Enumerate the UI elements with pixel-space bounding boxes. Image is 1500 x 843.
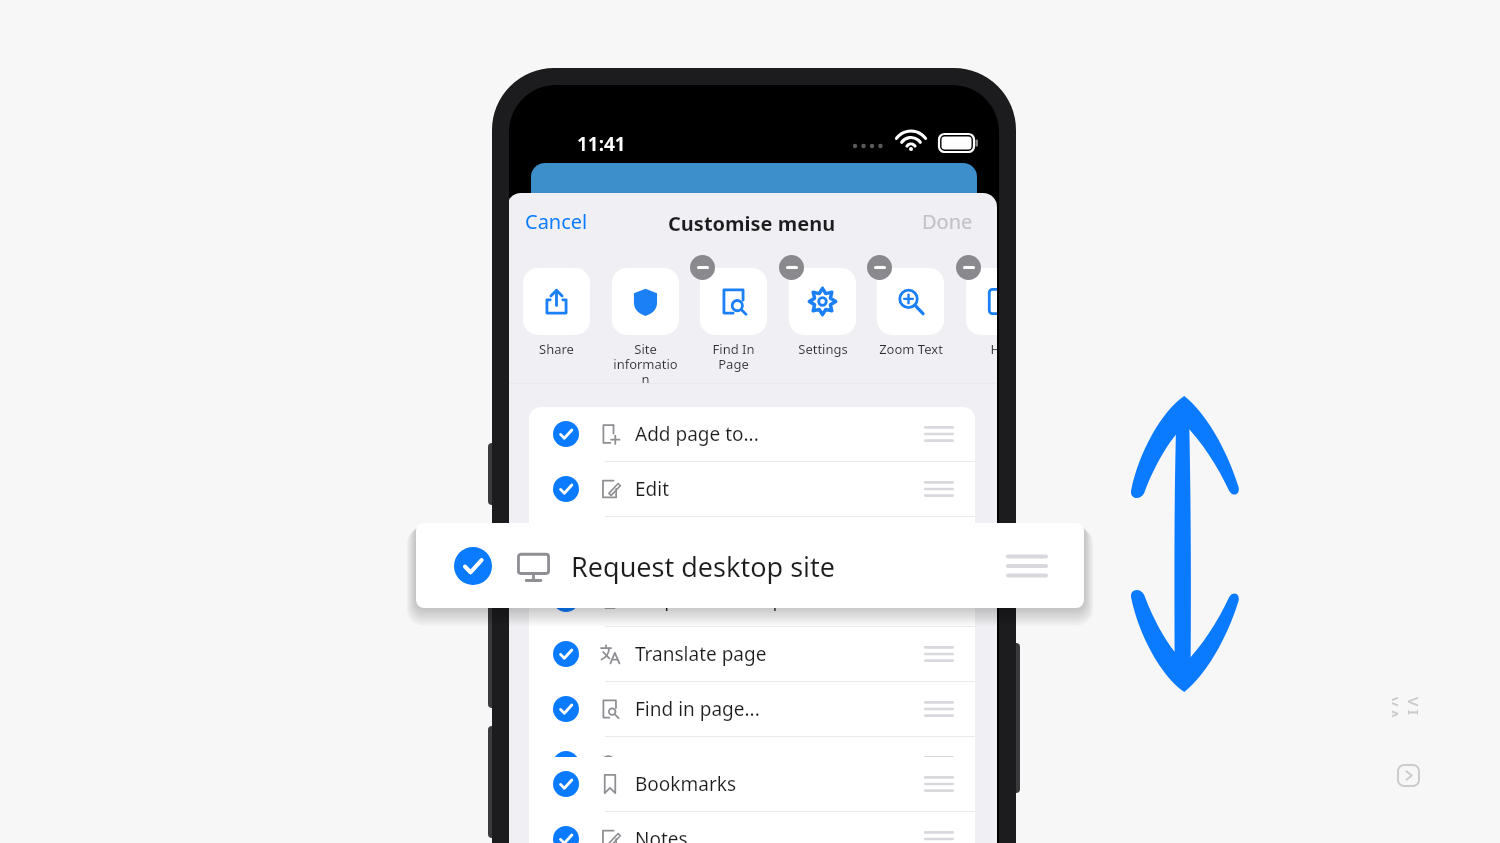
button[interactable]: Share: [523, 268, 590, 335]
staticText: Bookmarks: [635, 771, 737, 797]
staticText: Site information: [612, 340, 679, 388]
staticText: Share: [539, 340, 574, 358]
button[interactable]: Request desktop site: [416, 523, 1084, 608]
button[interactable]: Zoom text...: [529, 737, 975, 791]
button[interactable]: Remove: [867, 255, 892, 280]
staticText: Cancel: [525, 208, 588, 235]
button[interactable]: Zoom Text: [877, 268, 944, 335]
staticText: Edit: [635, 476, 670, 502]
staticText: 11:41: [577, 131, 626, 157]
staticText: Request desktop site: [571, 548, 836, 585]
staticText: Zoom Text: [879, 340, 943, 358]
staticText: Notes: [635, 826, 688, 843]
button[interactable]: Remove: [956, 255, 981, 280]
button[interactable]: Delete browsing data: [529, 517, 975, 571]
button[interactable]: His: [966, 268, 997, 335]
staticText: Done: [922, 208, 973, 235]
button[interactable]: Remove: [690, 255, 715, 280]
button[interactable]: Find In Page: [700, 268, 767, 335]
staticText: Find In Page: [700, 340, 767, 373]
button[interactable]: Find in page...: [529, 682, 975, 736]
button[interactable]: Notes: [529, 812, 975, 843]
button[interactable]: Translate page: [529, 627, 975, 681]
staticText: Customise menu: [668, 210, 836, 237]
button[interactable]: Add page to...: [529, 407, 975, 461]
button[interactable]: Request desktop site: [529, 572, 975, 626]
button[interactable]: Edit: [529, 462, 975, 516]
button[interactable]: Bookmarks: [529, 757, 975, 811]
staticText: Find in page...: [635, 696, 760, 722]
other: Vivaldi: [1398, 765, 1419, 786]
staticText: VIVALDI: [1392, 697, 1424, 729]
button[interactable]: Settings: [789, 268, 856, 335]
button[interactable]: Site information: [612, 268, 679, 335]
staticText: His: [990, 340, 997, 358]
staticText: Request desktop site: [635, 586, 821, 612]
staticText: Zoom text...: [635, 751, 741, 777]
button[interactable]: Done: [916, 203, 979, 240]
button[interactable]: Cancel: [519, 203, 594, 240]
button[interactable]: Remove: [779, 255, 804, 280]
staticText: Delete browsing data: [635, 531, 826, 557]
staticText: Translate page: [635, 641, 767, 667]
staticText: Add page to...: [635, 421, 759, 447]
staticText: Settings: [798, 340, 848, 358]
other: Drag up or down: [1126, 394, 1236, 694]
